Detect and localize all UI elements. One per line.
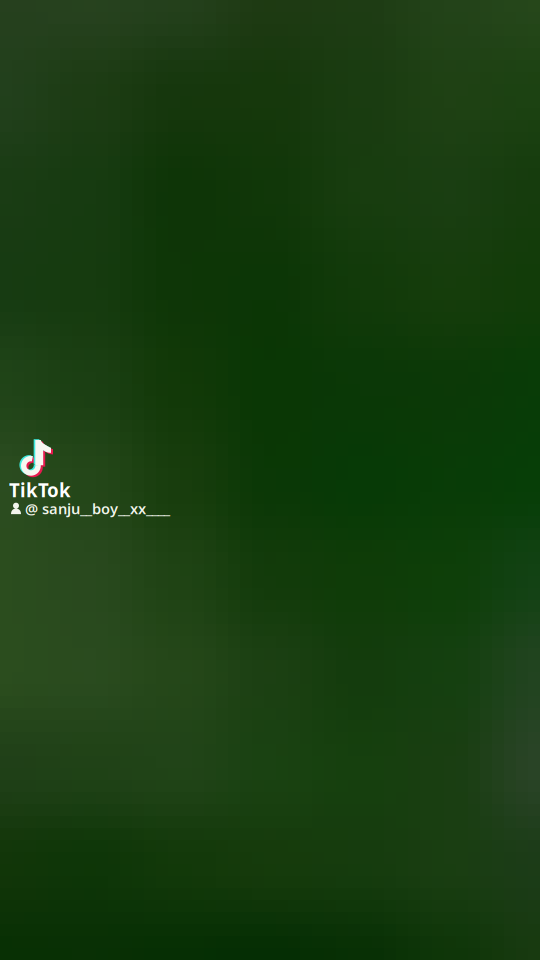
staticText: @ sanju__boy__xx____ (25, 499, 170, 518)
staticText: TikTok (9, 478, 71, 502)
